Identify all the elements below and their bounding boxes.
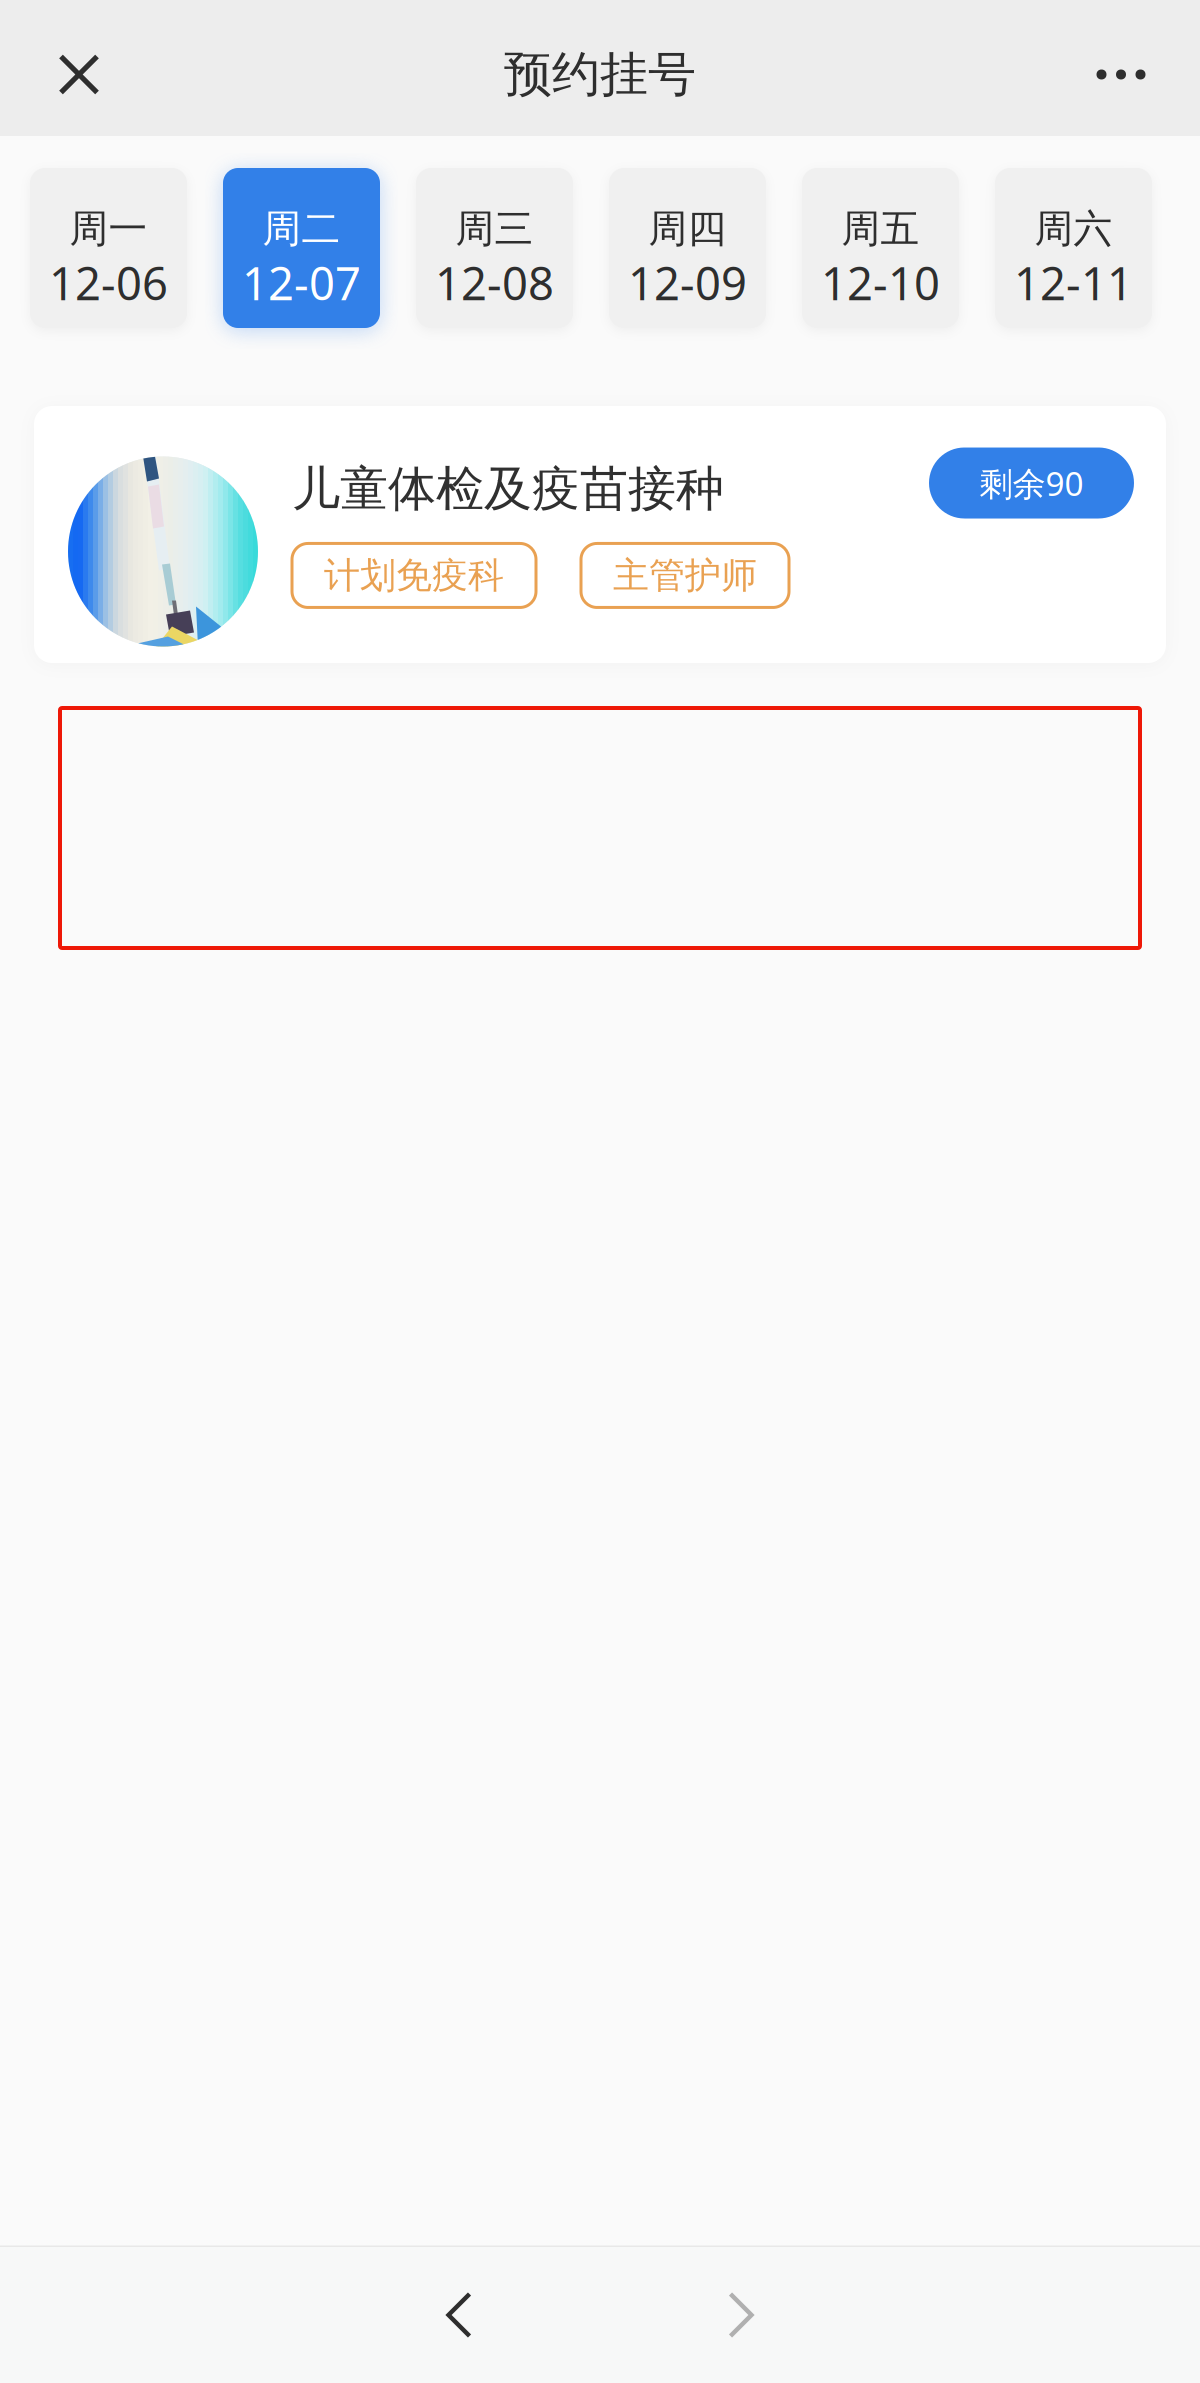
button[interactable]: 周一 [30,168,187,328]
staticText: 预约挂号 [504,45,696,104]
staticText: 周五 [841,205,919,253]
staticText: 主管护师 [613,553,757,597]
staticText: 12-08 [435,253,554,313]
button[interactable]: 周四 [609,168,766,328]
staticText: 周四 [648,205,726,253]
staticText: 剩余90 [979,461,1083,505]
staticText: 12-11 [1014,253,1133,313]
staticText: 周三 [455,205,533,253]
button[interactable]: Forward [676,2260,806,2370]
staticText: 12-06 [49,253,168,313]
staticText: 计划免疫科 [324,553,504,597]
button[interactable]: Close [31,24,127,124]
button[interactable]: More [1073,24,1169,124]
button[interactable]: 周二 [223,168,380,328]
staticText: 12-07 [242,253,361,313]
button[interactable]: 周三 [416,168,573,328]
staticText: 12-09 [628,253,747,313]
button[interactable]: 周六 [995,168,1152,328]
staticText: 12-10 [821,253,940,313]
button[interactable]: 周五 [802,168,959,328]
button[interactable]: Back [394,2260,524,2370]
button[interactable]: 儿童体检及疫苗接种 [34,406,1166,663]
staticText: 儿童体检及疫苗接种 [292,459,724,518]
staticText: 周六 [1034,205,1112,253]
staticText: 周二 [262,205,340,253]
staticText: 周一 [69,205,147,253]
